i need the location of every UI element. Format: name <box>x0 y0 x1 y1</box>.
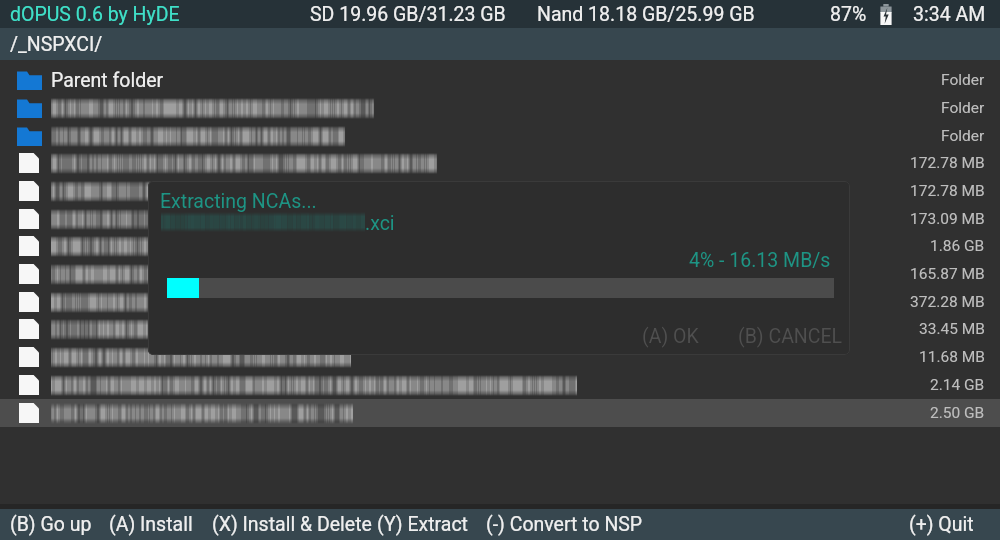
button[interactable]: 11.68 MB <box>0 343 1000 371</box>
button[interactable]: 2.50 GB <box>0 399 1000 427</box>
staticText: 33.45 MB <box>919 320 985 338</box>
button[interactable]: Folder <box>0 94 1000 122</box>
other: Battery charging, 87 percent <box>879 4 893 25</box>
staticText: dOPUS 0.6 by HyDE <box>10 3 180 26</box>
staticText: (A) Install <box>109 513 193 536</box>
button[interactable]: (A) OK <box>642 325 699 348</box>
staticText: SD 19.96 GB/31.23 GB <box>310 3 506 26</box>
button[interactable]: (+) Quit <box>909 509 974 540</box>
button[interactable]: Parent folder <box>0 66 1000 94</box>
staticText: 3:34 AM <box>913 3 986 26</box>
staticText: 4% - 16.13 MB/s <box>689 249 831 272</box>
button[interactable]: 33.45 MB <box>0 315 1000 343</box>
staticText: Folder <box>941 71 985 89</box>
staticText: /_NSPXCI/ <box>10 33 103 56</box>
staticText: Folder <box>941 99 985 117</box>
button[interactable]: (X) Install & Delete <box>212 509 372 540</box>
staticText: (B) CANCEL <box>738 325 843 348</box>
button[interactable]: 165.87 MB <box>0 260 1000 288</box>
staticText: 87% <box>830 3 867 26</box>
button[interactable]: Folder <box>0 122 1000 150</box>
staticText: (B) Go up <box>10 513 92 536</box>
button[interactable]: 2.14 GB <box>0 371 1000 399</box>
button[interactable]: 173.09 MB <box>0 205 1000 233</box>
staticText: 172.78 MB <box>910 182 985 200</box>
staticText: 173.09 MB <box>910 210 985 228</box>
button[interactable]: 172.78 MB <box>0 177 1000 205</box>
staticText: .xci <box>365 212 395 235</box>
staticText: (Y) Extract <box>377 513 468 536</box>
staticText: 172.78 MB <box>910 154 985 172</box>
button[interactable]: 1.86 GB <box>0 232 1000 260</box>
staticText: (A) OK <box>642 325 699 348</box>
staticText: (+) Quit <box>909 513 974 536</box>
button[interactable]: 172.78 MB <box>0 149 1000 177</box>
staticText: 372.28 MB <box>910 293 985 311</box>
staticText: Folder <box>941 127 985 145</box>
staticText: 165.87 MB <box>910 265 985 283</box>
button[interactable]: (-) Convert to NSP <box>486 509 643 540</box>
staticText: 2.14 GB <box>930 376 985 394</box>
button[interactable]: (Y) Extract <box>377 509 468 540</box>
staticText: Extracting NCAs... <box>160 190 317 213</box>
staticText: Nand 18.18 GB/25.99 GB <box>537 3 755 26</box>
staticText: (X) Install & Delete <box>212 513 372 536</box>
staticText: Parent folder <box>51 69 164 92</box>
staticText: 1.86 GB <box>930 237 985 255</box>
button[interactable]: (A) Install <box>109 509 193 540</box>
staticText: 2.50 GB <box>930 404 985 422</box>
button[interactable]: (B) CANCEL <box>738 325 843 348</box>
staticText: (-) Convert to NSP <box>486 513 643 536</box>
button[interactable]: (B) Go up <box>10 509 92 540</box>
button[interactable]: 372.28 MB <box>0 288 1000 316</box>
staticText: 11.68 MB <box>919 348 985 366</box>
